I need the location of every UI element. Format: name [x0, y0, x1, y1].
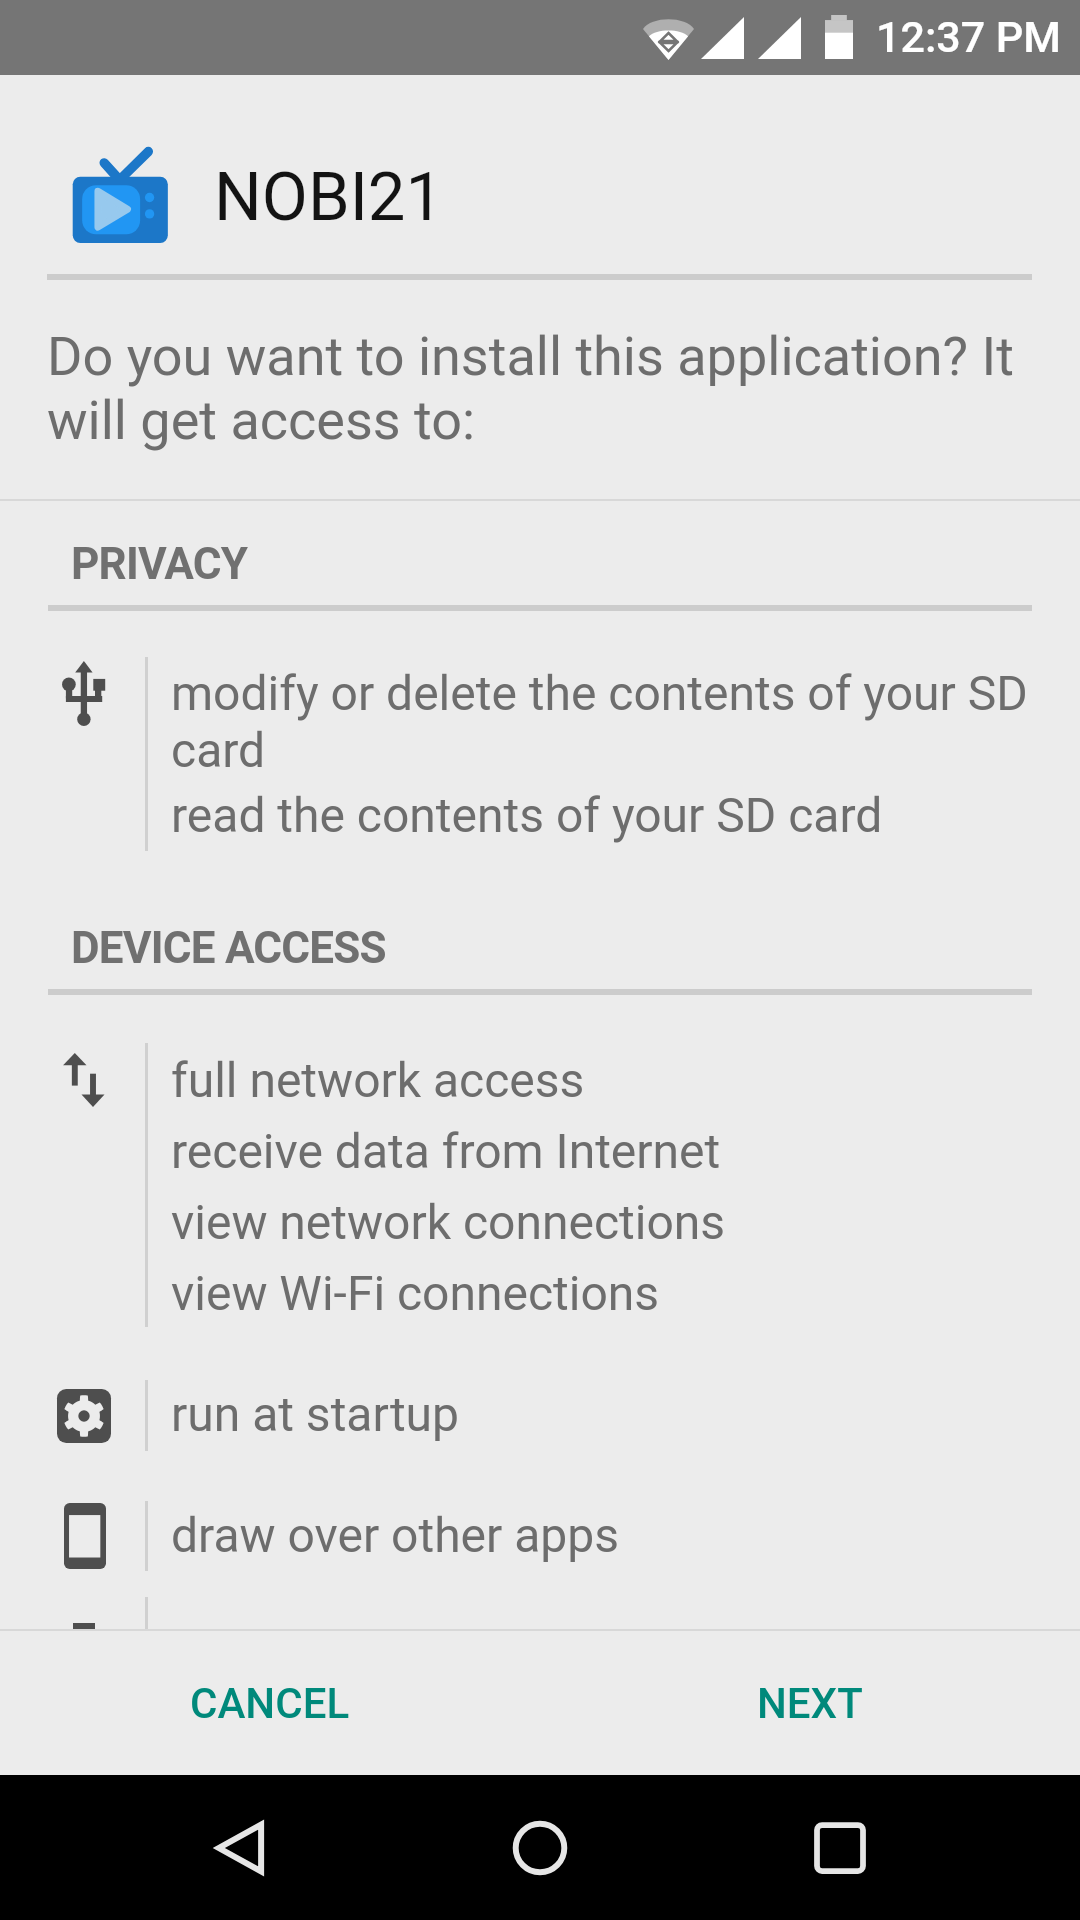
button[interactable]: run at startup — [0, 1380, 1080, 1455]
button[interactable]: NEXT — [588, 1631, 1032, 1775]
button[interactable]: CANCEL — [48, 1631, 492, 1775]
staticText: receive data from Internet — [171, 1123, 721, 1180]
button[interactable]: full network access — [0, 1043, 1080, 1327]
staticText: card — [171, 722, 266, 779]
staticText: 12:37 PM — [876, 14, 1062, 62]
staticText: PRIVACY — [71, 538, 248, 590]
staticText: DEVICE ACCESS — [71, 922, 386, 974]
staticText: view Wi-Fi connections — [171, 1265, 660, 1322]
button[interactable]: draw over other apps — [0, 1501, 1080, 1571]
button[interactable]: Back — [180, 1775, 300, 1920]
staticText: CANCEL — [190, 1678, 350, 1728]
button[interactable]: Recent apps — [780, 1775, 900, 1920]
staticText: run at startup — [171, 1386, 459, 1443]
button[interactable]: Home — [480, 1775, 600, 1920]
staticText: modify or delete the contents of your SD — [171, 665, 1028, 722]
staticText: full network access — [171, 1052, 585, 1109]
button[interactable]: modify or delete the contents of your SD — [0, 657, 1080, 851]
staticText: read the contents of your SD card — [171, 787, 883, 844]
staticText: NEXT — [757, 1678, 863, 1728]
staticText: NOBI21 — [214, 160, 444, 236]
staticText: Do you want to install this application?… — [47, 324, 1027, 452]
staticText: view network connections — [171, 1194, 726, 1251]
staticText: draw over other apps — [171, 1507, 620, 1564]
